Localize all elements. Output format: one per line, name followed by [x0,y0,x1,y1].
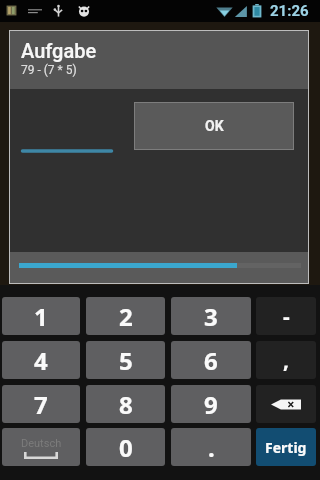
staticText: 6 [204,344,218,377]
staticText: Fertig [265,438,307,457]
staticText: 9 [204,388,218,421]
staticText: 4 [34,344,48,377]
staticText: 0 [119,431,133,464]
button[interactable]: . [171,428,251,466]
button[interactable]: - [256,297,316,335]
button[interactable]: 5 [86,341,165,379]
button[interactable]: 9 [171,385,251,423]
button[interactable]: 3 [171,297,251,335]
button[interactable]: Deutsch [2,428,80,466]
staticText: 3 [204,300,218,333]
button[interactable]: 8 [86,385,165,423]
staticText: 8 [119,388,133,421]
button[interactable]: , [256,341,316,379]
staticText: , [283,346,289,375]
staticText: 21:26 [270,2,309,20]
button[interactable] [21,99,113,153]
staticText: 5 [119,344,133,377]
staticText: 79 - (7 * 5) [21,63,77,77]
staticText: - [283,302,290,331]
button[interactable]: 1 [2,297,80,335]
staticText: Deutsch [21,437,62,450]
button[interactable]: Backspace [256,385,316,423]
button[interactable]: 0 [86,428,165,466]
staticText: 2 [119,300,133,333]
staticText: OK [205,118,224,134]
button[interactable]: 7 [2,385,80,423]
staticText: 7 [34,388,48,421]
staticText: . [208,431,215,464]
button[interactable]: OK [135,103,293,149]
button[interactable]: 6 [171,341,251,379]
staticText: 1 [34,300,48,333]
button[interactable]: 4 [2,341,80,379]
button[interactable]: 2 [86,297,165,335]
button[interactable]: Fertig [256,428,316,466]
staticText: Aufgabe [21,39,97,62]
